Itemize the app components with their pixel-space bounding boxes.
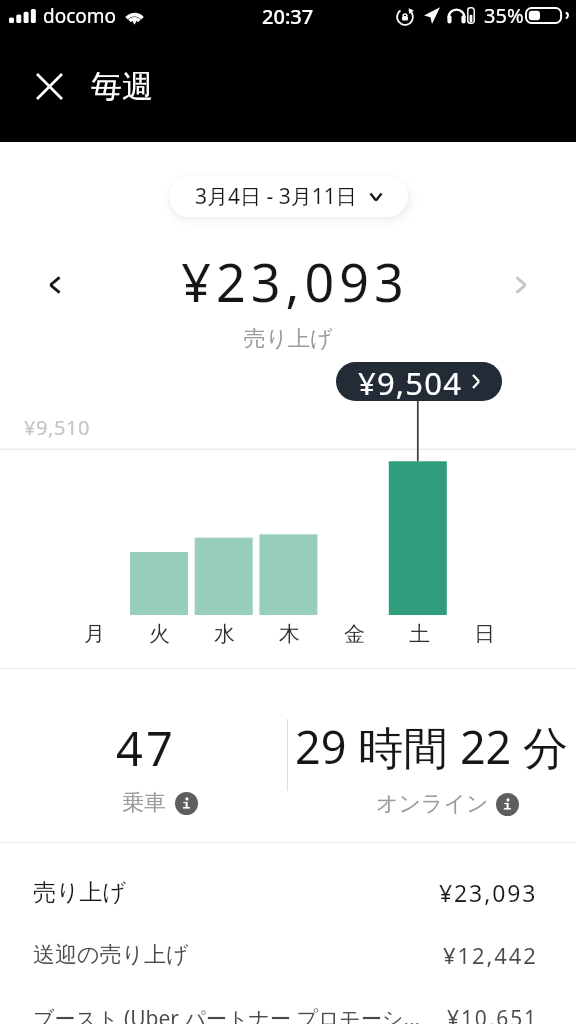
staticText: docomo	[43, 3, 117, 29]
staticText: 土	[409, 621, 430, 647]
staticText: 水	[214, 621, 235, 647]
staticText: 売り上げ	[33, 878, 431, 907]
button[interactable]: 次の週	[490, 254, 552, 316]
staticText: 月	[84, 621, 105, 647]
staticText: 火	[149, 621, 170, 647]
button[interactable]: 3月4日 - 3月11日	[169, 176, 408, 217]
staticText: ¥9,510	[24, 414, 91, 441]
button[interactable]: 詳細情報	[496, 793, 519, 816]
staticText: 3月4日 - 3月11日	[195, 182, 357, 211]
staticText: 木	[279, 621, 300, 647]
button[interactable]: ¥9,504	[336, 362, 502, 401]
staticText: 35%	[484, 2, 524, 29]
staticText: 29 時間 22 分	[295, 716, 569, 777]
staticText: 売り上げ	[0, 325, 576, 353]
button[interactable]: ブースト (Uber パートナー プロモーシ…	[0, 990, 576, 1024]
staticText: ¥12,442	[443, 940, 538, 970]
staticText: ¥23,093	[7, 246, 576, 317]
staticText: 日	[474, 621, 495, 647]
staticText: 47	[116, 716, 176, 780]
button[interactable]: 前の週	[24, 254, 86, 316]
button[interactable]: 詳細情報	[175, 792, 198, 815]
staticText: 乗車	[122, 789, 166, 817]
staticText: 毎週	[91, 67, 153, 106]
button[interactable]: 売り上げ	[0, 864, 576, 920]
button[interactable]: 閉じる	[26, 62, 72, 110]
staticText: オンライン	[376, 790, 489, 818]
staticText: ¥10,651	[447, 1004, 538, 1024]
staticText: ¥9,504	[358, 362, 463, 401]
staticText: ブースト (Uber パートナー プロモーシ…	[33, 1004, 439, 1024]
staticText: 20:37	[262, 3, 314, 30]
staticText: 送迎の売り上げ	[33, 941, 435, 969]
staticText: ¥23,093	[439, 877, 538, 908]
button[interactable]: 送迎の売り上げ	[0, 927, 576, 983]
staticText: 金	[344, 621, 365, 647]
